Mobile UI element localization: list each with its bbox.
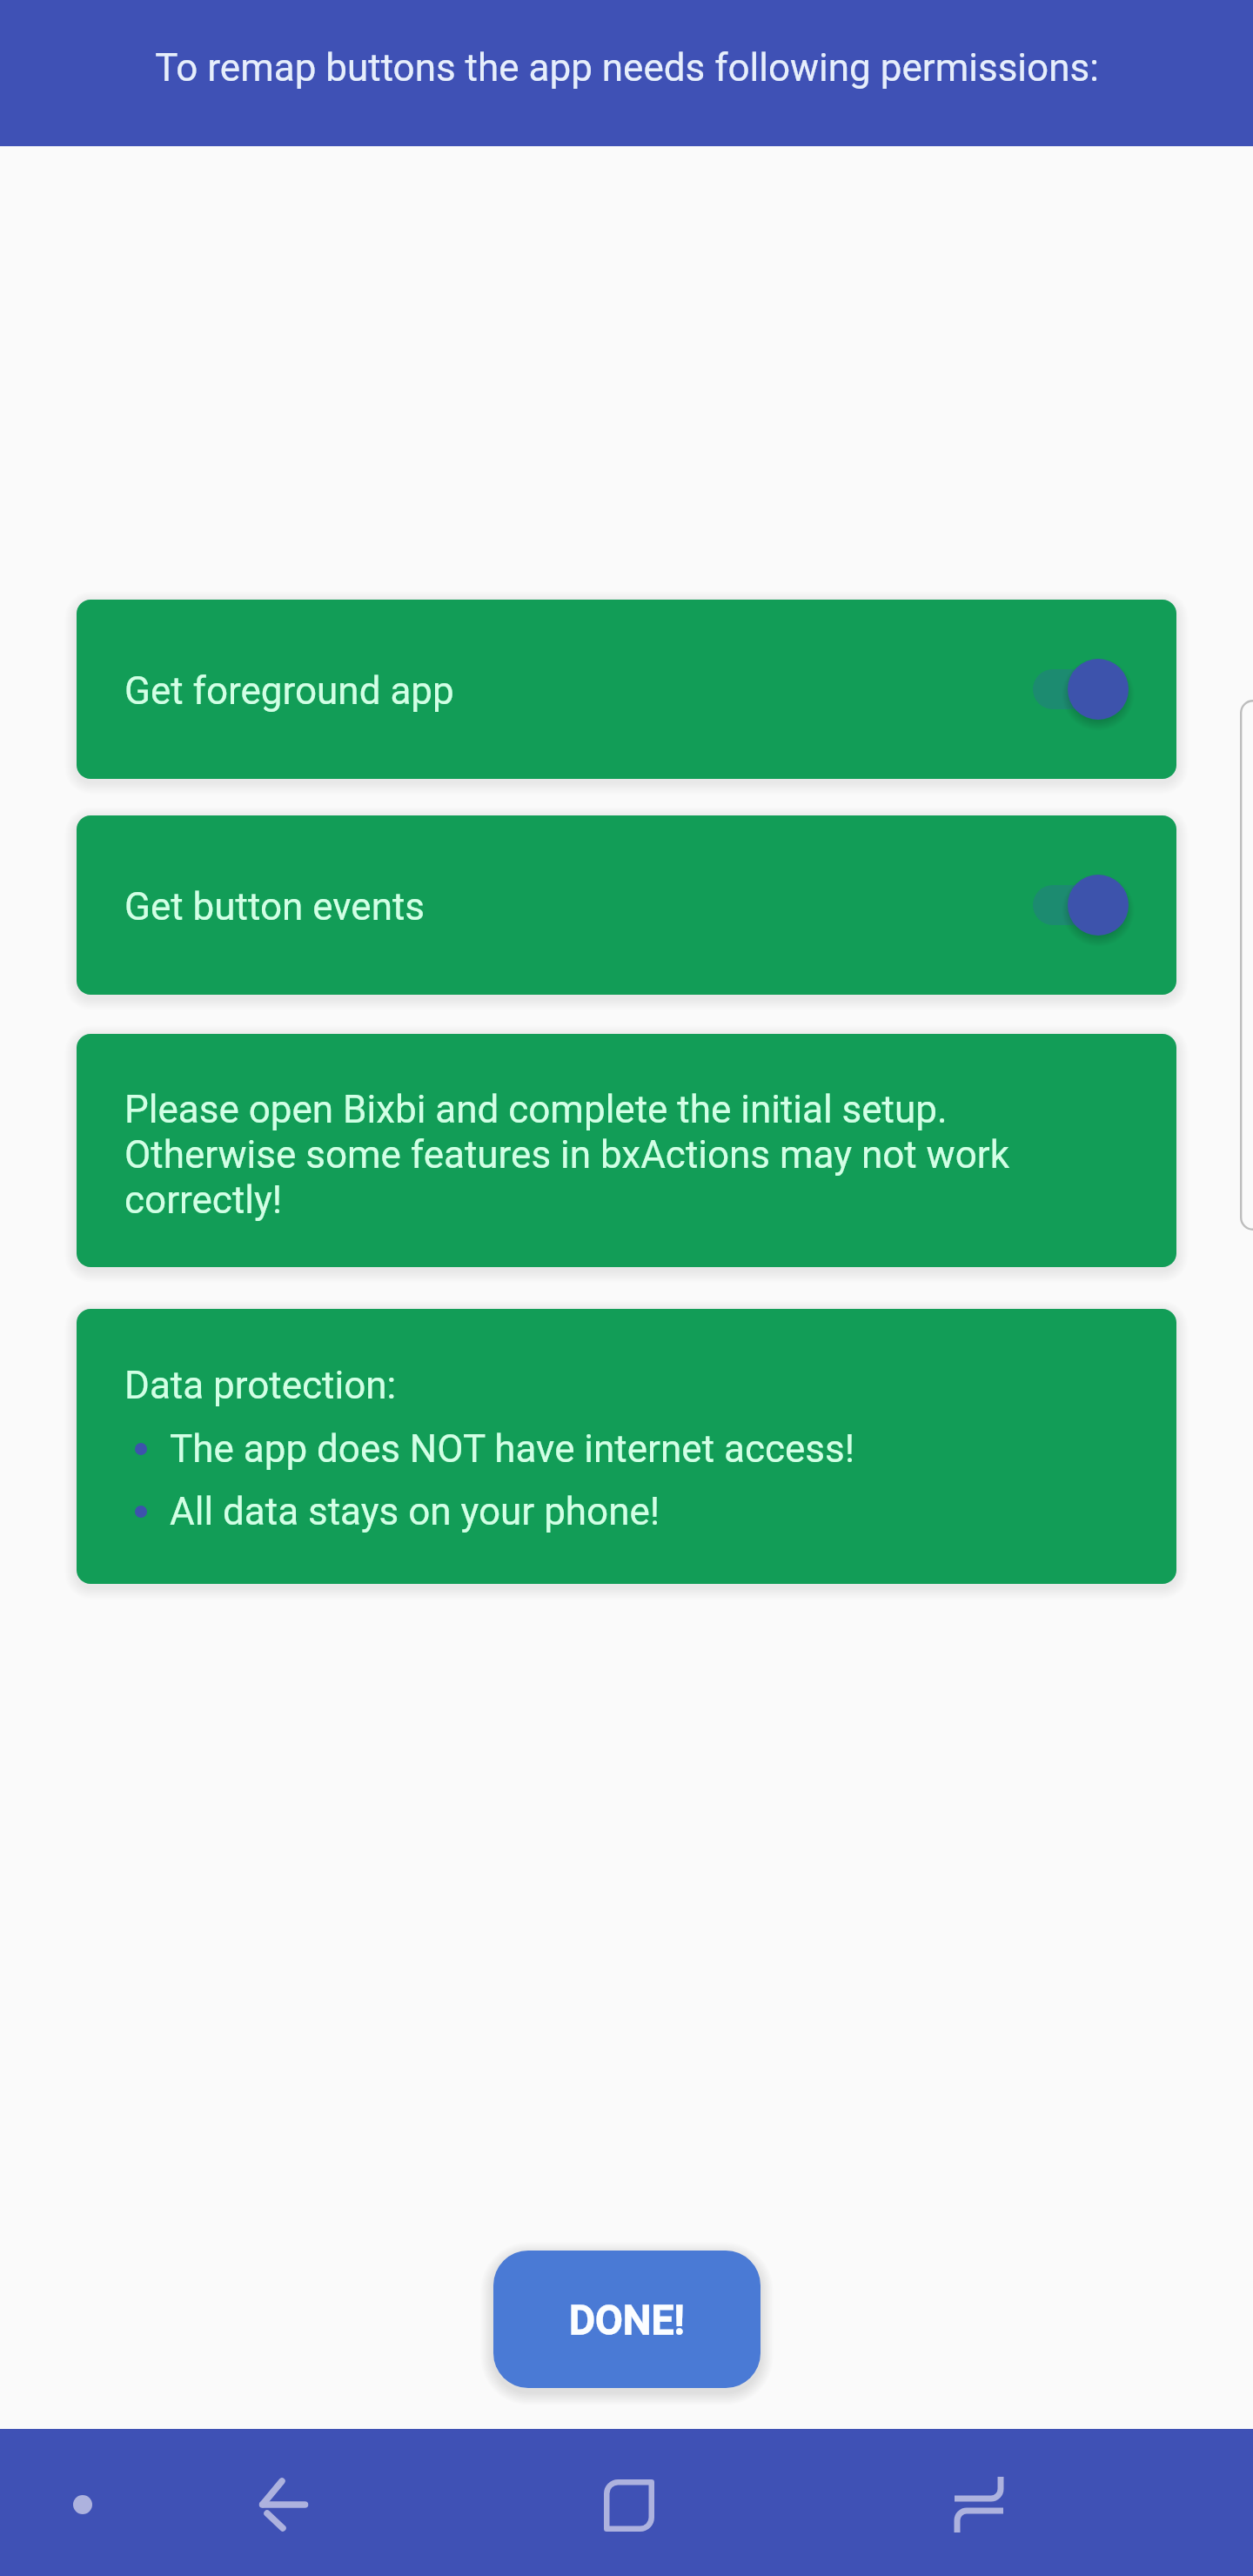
- staticText: To remap buttons the app needs following…: [155, 45, 1099, 91]
- button[interactable]: Get button events: [77, 815, 1176, 995]
- staticText: All data stays on your phone!: [170, 1489, 660, 1534]
- button[interactable]: Please open Bixbi and complete the initi…: [77, 1034, 1176, 1267]
- button[interactable]: Home: [568, 2445, 690, 2566]
- button[interactable]: Back: [223, 2444, 345, 2566]
- button[interactable]: Assistant: [30, 2452, 135, 2557]
- button[interactable]: Data protection:: [77, 1309, 1176, 1584]
- staticText: Get button events: [124, 884, 425, 929]
- staticText: Please open Bixbi and complete the initi…: [124, 1087, 1126, 1223]
- button[interactable]: Recents: [918, 2444, 1040, 2566]
- staticText: Data protection:: [124, 1363, 397, 1408]
- staticText: The app does NOT have internet access!: [170, 1426, 855, 1472]
- staticText: DONE!: [569, 2297, 685, 2344]
- button[interactable]: Get foreground app: [77, 600, 1176, 779]
- staticText: Get foreground app: [124, 668, 454, 714]
- button[interactable]: DONE!: [493, 2251, 761, 2388]
